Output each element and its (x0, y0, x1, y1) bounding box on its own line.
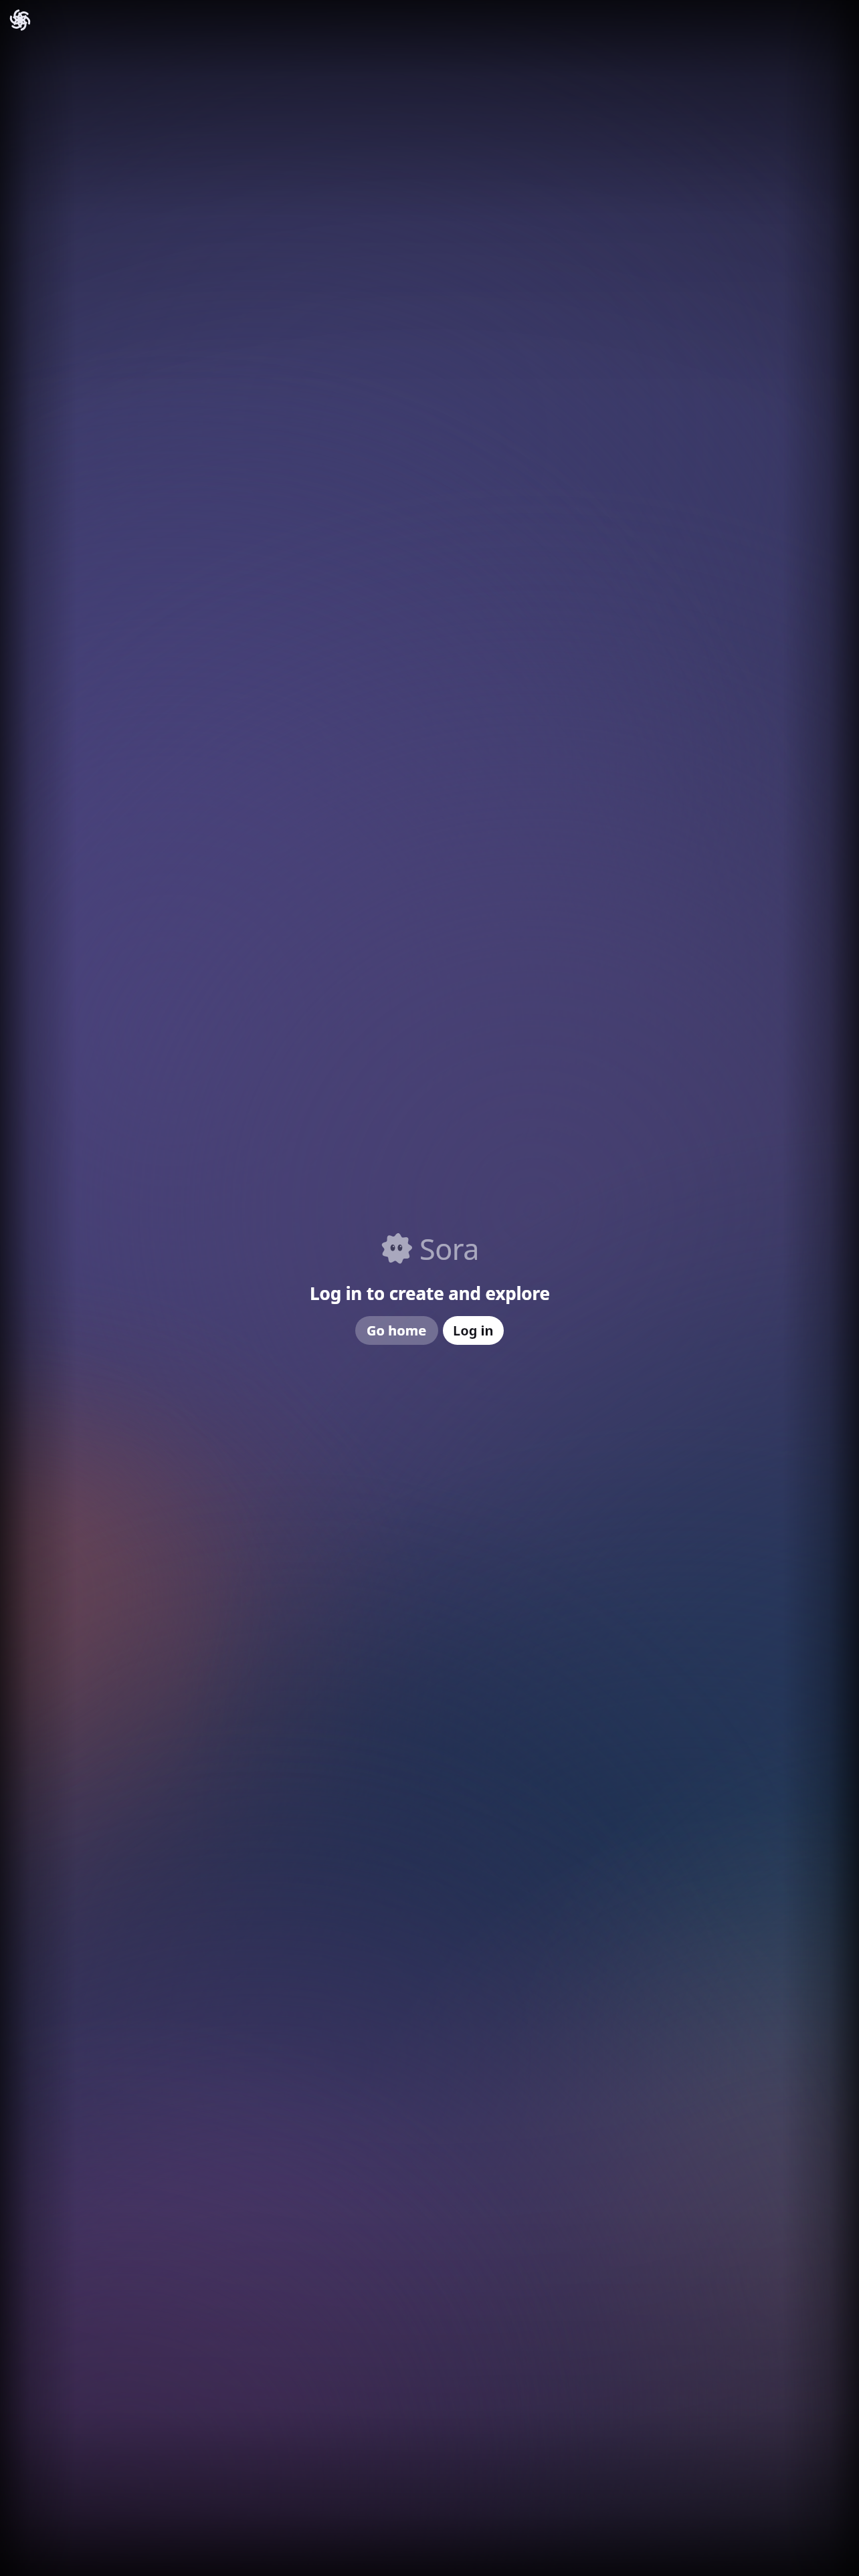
button[interactable]: OpenAI (9, 9, 31, 31)
staticText: Log in (453, 1321, 494, 1339)
staticText: Go home (367, 1321, 427, 1339)
staticText: Log in to create and explore (310, 1281, 550, 1305)
staticText: Sora (419, 1229, 480, 1268)
button[interactable]: Log in (443, 1316, 504, 1345)
button[interactable]: Go home (355, 1316, 438, 1345)
